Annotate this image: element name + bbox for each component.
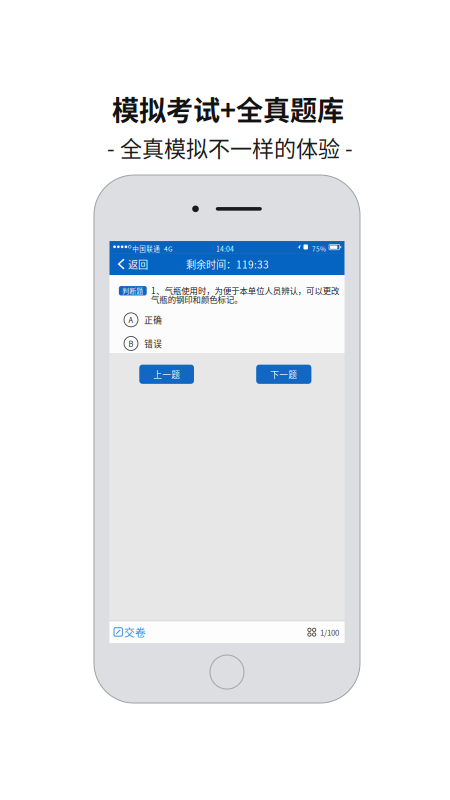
staticText: 返回: [128, 257, 148, 271]
button[interactable]: 交卷: [109, 621, 152, 643]
staticText: 中国联通: [132, 244, 160, 253]
button[interactable]: 返回: [109, 253, 156, 275]
staticText: 1/100: [320, 626, 339, 638]
staticText: 下一题: [270, 368, 297, 380]
staticText: 剩余时间：119:33: [186, 257, 269, 271]
staticText: 错误: [144, 337, 162, 350]
staticText: A: [128, 314, 133, 325]
staticText: 判断题: [122, 286, 143, 296]
staticText: 1、气瓶使用时，为便于本单位人员辨认，可以更改: [151, 284, 339, 296]
button[interactable]: 下一题: [256, 365, 311, 384]
staticText: 75%: [312, 244, 326, 253]
staticText: - 全真模拟不一样的体验 -: [107, 131, 353, 163]
staticText: 4G: [164, 244, 173, 253]
staticText: 上一题: [153, 368, 180, 380]
staticText: 14:04: [216, 244, 234, 254]
button[interactable]: 上一题: [139, 365, 194, 384]
button[interactable]: A: [109, 308, 344, 332]
staticText: 气瓶的钢印和颜色标记。: [151, 293, 242, 305]
staticText: 交卷: [124, 624, 146, 640]
staticText: 正确: [144, 314, 162, 326]
button[interactable]: 1/100: [302, 621, 344, 643]
staticText: B: [128, 338, 133, 349]
staticText: 模拟考试+全真题库: [112, 89, 344, 128]
button[interactable]: B: [109, 332, 344, 355]
